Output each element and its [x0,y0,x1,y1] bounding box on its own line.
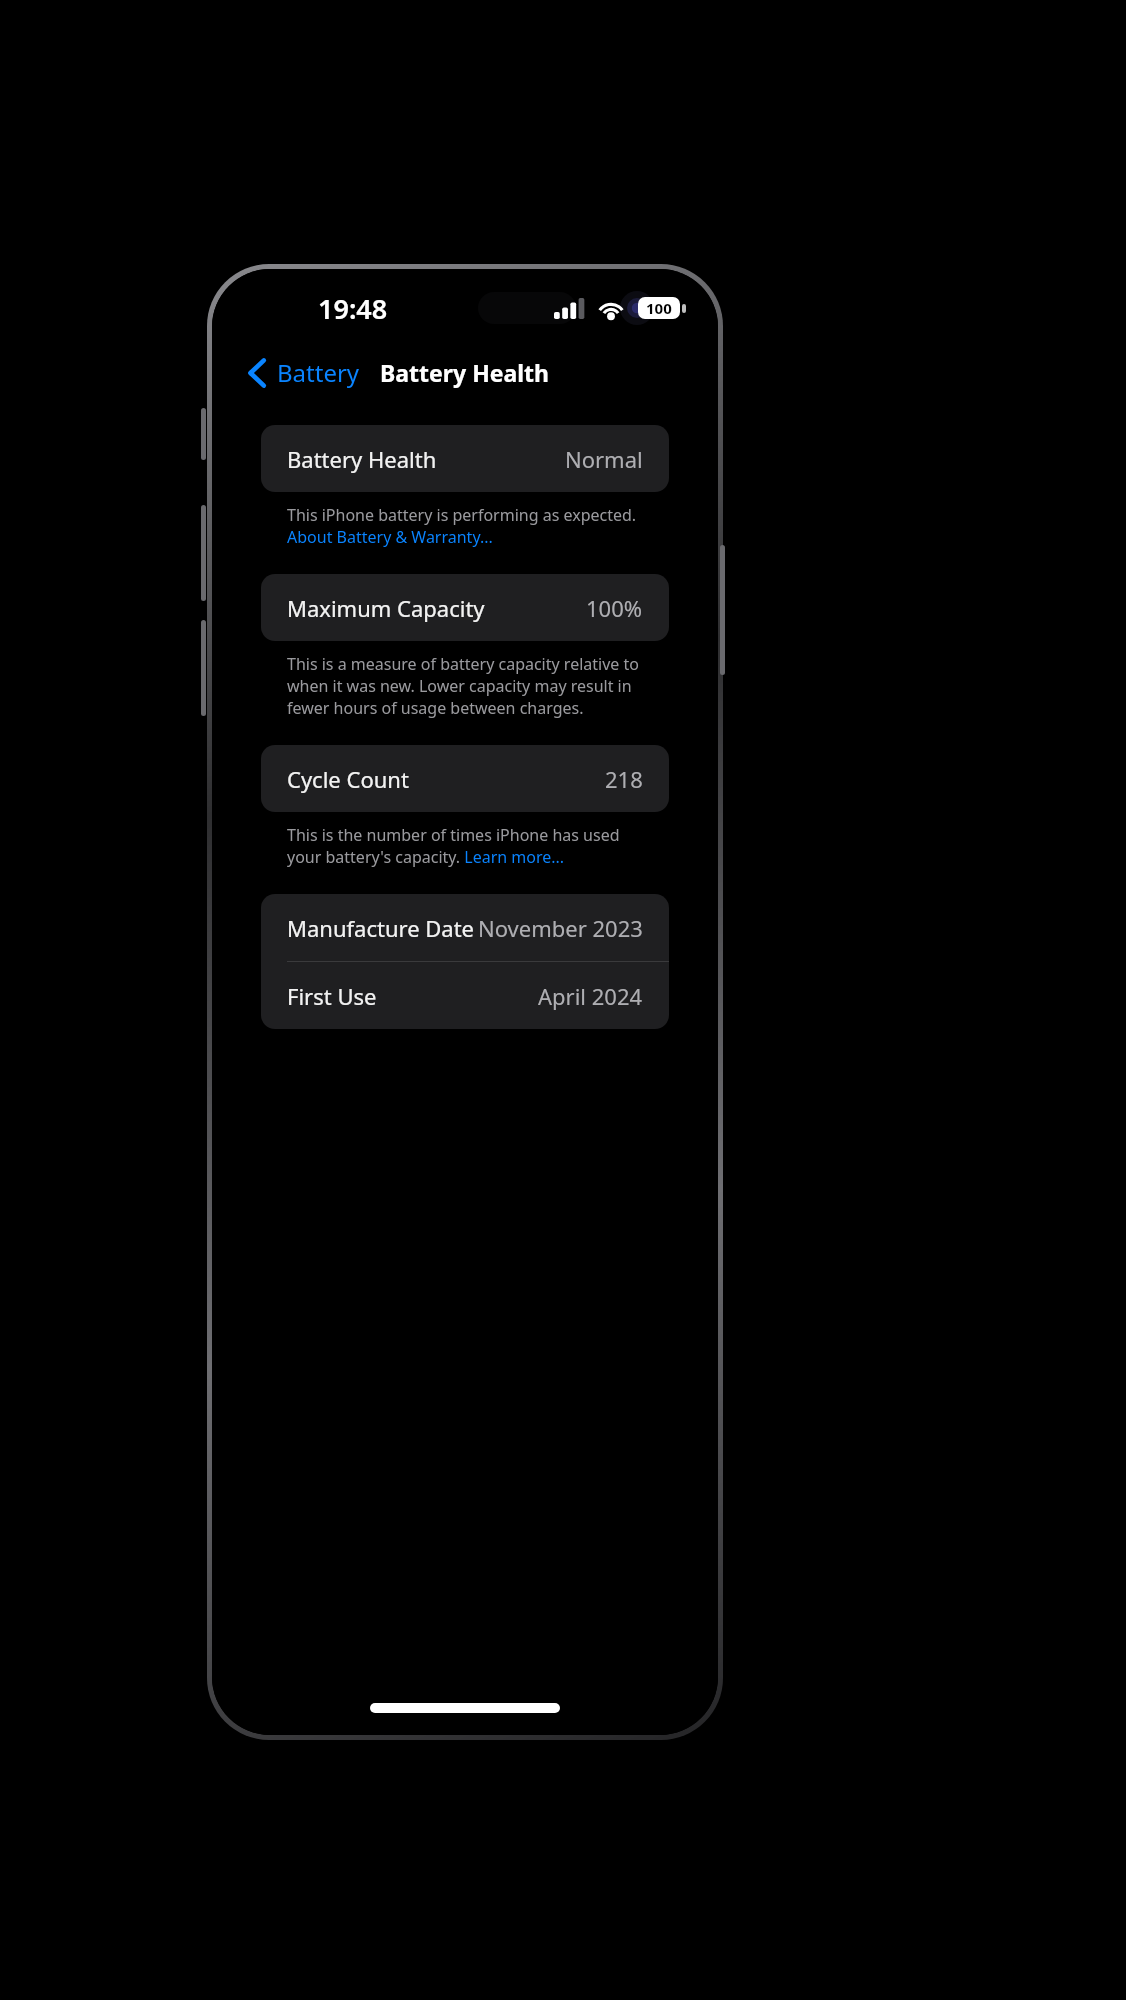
button[interactable]: Battery [248,356,360,389]
staticText: Maximum Capacity [287,593,485,623]
staticText: 100% [586,593,643,623]
staticText: This iPhone battery is performing as exp… [287,504,655,548]
button[interactable]: Manufacture Date [261,894,669,961]
staticText: 100 [646,298,672,318]
button[interactable]: Battery Health [261,425,669,492]
staticText: This is the number of times iPhone has u… [287,824,655,868]
staticText: Battery [277,356,360,389]
staticText: Normal [565,444,643,474]
staticText: Battery Health [287,444,437,474]
staticText: 218 [605,764,643,794]
staticText: First Use [287,981,377,1011]
button[interactable]: First Use [261,962,669,1029]
staticText: This is a measure of battery capacity re… [287,653,655,719]
staticText: Cycle Count [287,764,409,794]
staticText: Manufacture Date [287,913,475,943]
button[interactable]: Maximum Capacity [261,574,669,641]
staticText: April 2024 [538,981,643,1011]
button[interactable]: Cycle Count [261,745,669,812]
staticText: Battery Health [380,357,550,388]
staticText: 19:48 [318,290,388,327]
staticText: November 2023 [478,913,643,943]
